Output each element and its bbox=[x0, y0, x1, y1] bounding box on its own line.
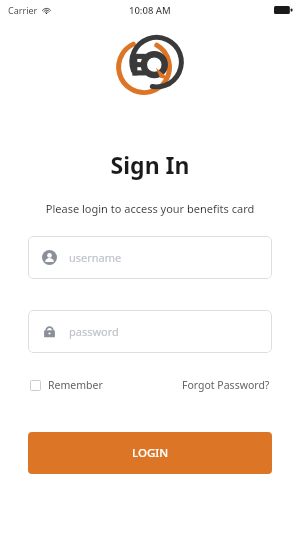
staticText: Forgot Password? bbox=[182, 378, 270, 392]
staticText: LOGIN bbox=[132, 445, 169, 461]
button[interactable]: Remember bbox=[28, 375, 105, 395]
staticText: Sign In bbox=[0, 149, 300, 180]
button[interactable]: username bbox=[28, 236, 272, 279]
staticText: Remember bbox=[48, 378, 103, 392]
staticText: username bbox=[69, 250, 122, 265]
button[interactable]: Forgot Password? bbox=[180, 375, 272, 395]
staticText: 10:08 AM bbox=[129, 4, 171, 17]
staticText: password bbox=[69, 324, 119, 339]
staticText: Please login to access your benefits car… bbox=[0, 201, 300, 216]
staticText: Carrier bbox=[8, 4, 38, 16]
button[interactable]: password bbox=[28, 310, 272, 353]
button[interactable]: LOGIN bbox=[28, 432, 272, 474]
